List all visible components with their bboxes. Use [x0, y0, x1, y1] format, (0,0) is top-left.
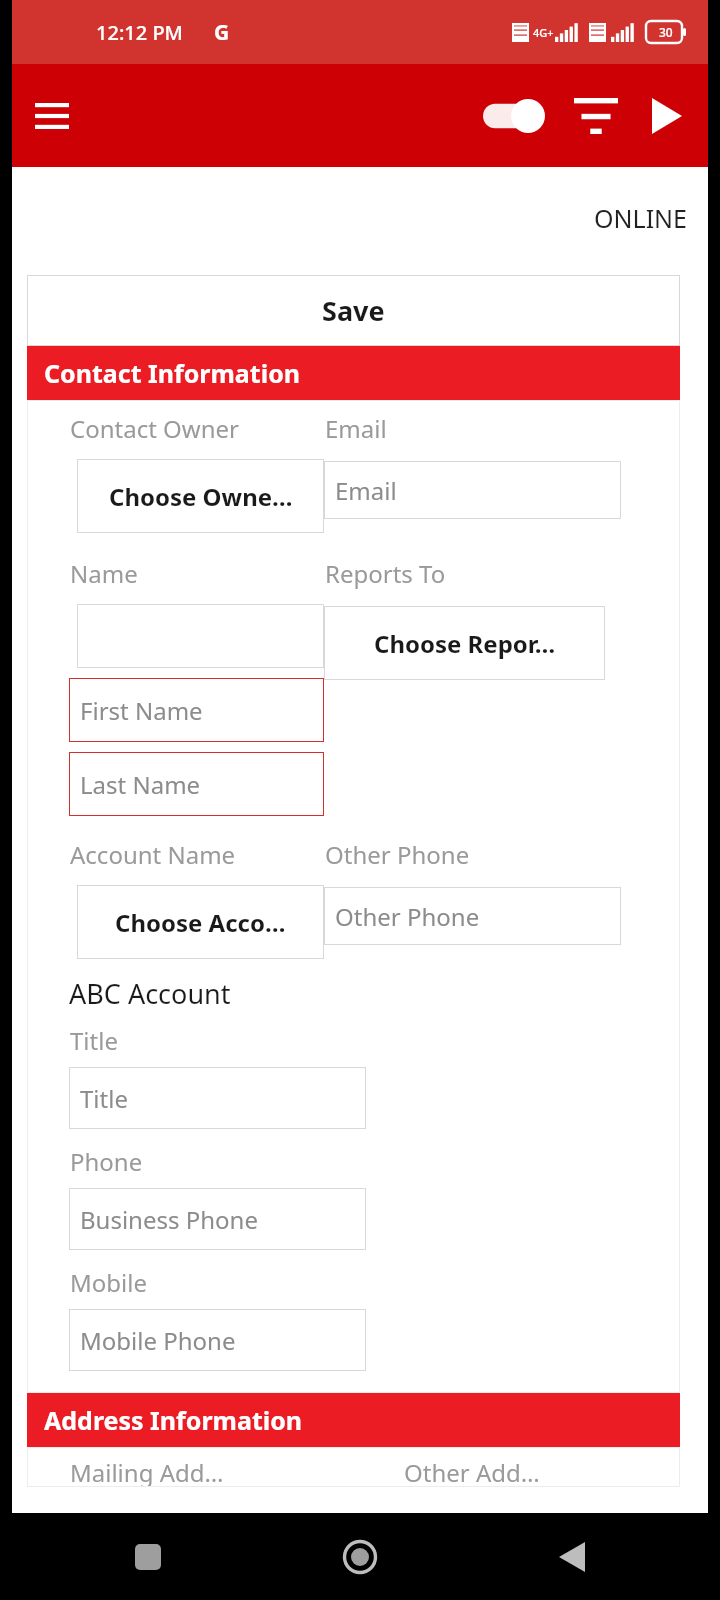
button[interactable]: Back	[544, 1529, 600, 1585]
staticText: 4G+	[533, 25, 554, 40]
button[interactable]: Choose Owne…	[77, 459, 324, 533]
staticText: 12:12 PM	[96, 19, 183, 46]
staticText: Email	[325, 412, 387, 445]
button[interactable]: Other Phone	[324, 887, 621, 945]
staticText: Contact Owner	[70, 412, 239, 445]
staticText: Mailing Add…	[70, 1456, 224, 1487]
staticText: ABC Account	[69, 975, 231, 1012]
staticText: Contact Information	[44, 356, 301, 390]
button[interactable]: Save	[27, 275, 680, 346]
button[interactable]: First Name	[69, 678, 324, 742]
button[interactable]: Home	[332, 1529, 388, 1585]
staticText: Other Phone	[325, 838, 470, 871]
staticText: Title	[70, 1024, 118, 1057]
staticText: Mobile	[70, 1266, 147, 1299]
staticText: Mobile Phone	[80, 1324, 236, 1357]
button[interactable]: Play	[634, 87, 700, 145]
staticText: Save	[322, 292, 385, 329]
button[interactable]: Toggle online	[472, 87, 556, 145]
staticText: Last Name	[80, 768, 201, 801]
button[interactable]: Last Name	[69, 752, 324, 816]
button[interactable]	[77, 604, 324, 668]
staticText: Choose Acco…	[115, 906, 286, 939]
button[interactable]: Choose Acco…	[77, 885, 324, 959]
button[interactable]: Recents	[120, 1529, 176, 1585]
staticText: Choose Owne…	[109, 480, 293, 513]
staticText: Title	[80, 1082, 128, 1115]
staticText: Email	[335, 474, 397, 507]
button[interactable]: Email	[324, 461, 621, 519]
button[interactable]: Filter	[560, 87, 632, 145]
staticText: First Name	[80, 694, 203, 727]
staticText: Account Name	[70, 838, 236, 871]
staticText: Phone	[70, 1145, 143, 1178]
staticText: Choose Repor…	[374, 627, 556, 660]
button[interactable]: Menu	[22, 86, 82, 146]
staticText: Reports To	[325, 557, 446, 590]
button[interactable]: Mobile Phone	[69, 1309, 366, 1371]
button[interactable]: Business Phone	[69, 1188, 366, 1250]
staticText: Other Add…	[404, 1456, 540, 1487]
staticText: Name	[70, 557, 138, 590]
button[interactable]: Title	[69, 1067, 366, 1129]
staticText: G	[214, 18, 230, 47]
button[interactable]: Choose Repor…	[324, 606, 605, 680]
staticText: Business Phone	[80, 1203, 258, 1236]
staticText: Other Phone	[335, 900, 480, 933]
staticText: ONLINE	[594, 201, 688, 235]
staticText: 30	[659, 24, 673, 40]
staticText: Address Information	[44, 1403, 303, 1437]
